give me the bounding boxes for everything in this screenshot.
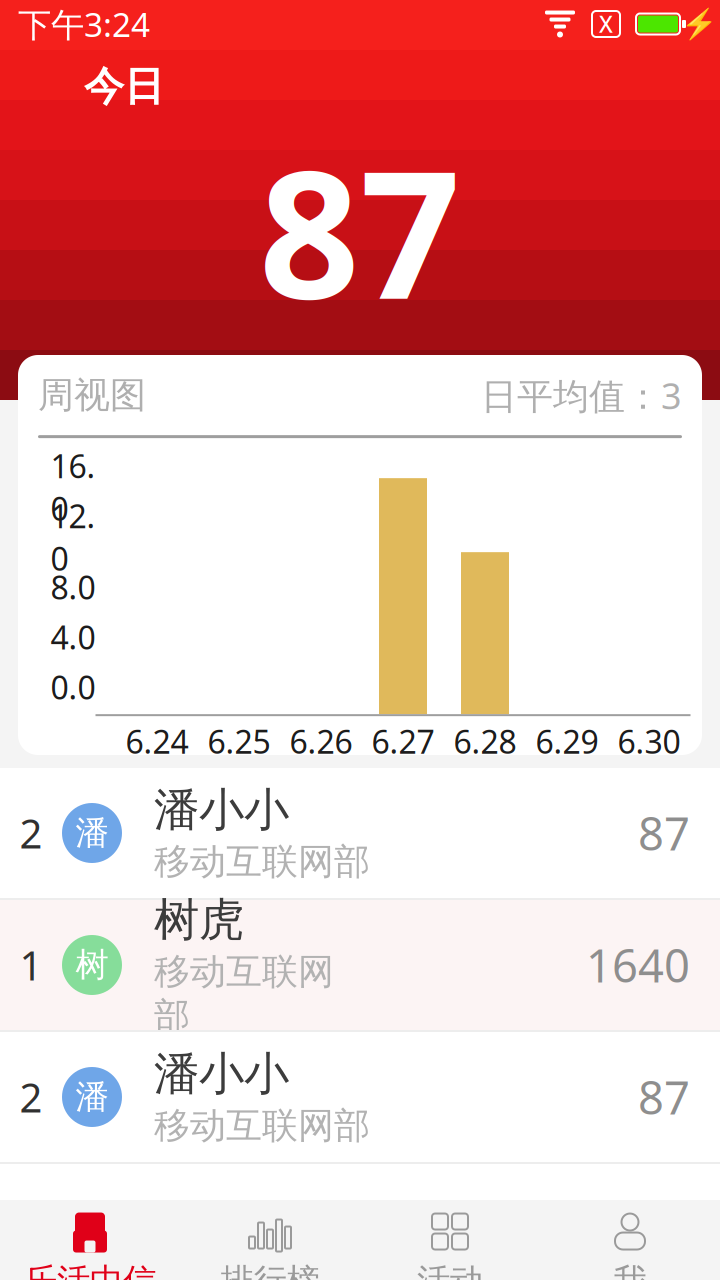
staticText: 潘小小: [154, 782, 289, 838]
staticText: 87: [638, 1067, 690, 1127]
staticText: 1: [19, 938, 42, 991]
staticText: 16.0: [50, 445, 95, 530]
staticText: 排行榜: [220, 1260, 319, 1280]
staticText: 潘小小: [154, 1046, 289, 1102]
button[interactable]: 乐活中信: [0, 1208, 180, 1280]
button[interactable]: 1: [0, 900, 720, 1030]
staticText: 12.0: [50, 495, 95, 580]
button[interactable]: 活动: [360, 1208, 540, 1280]
staticText: 下午3:24: [18, 2, 150, 46]
staticText: 潘: [75, 1076, 108, 1117]
staticText: ⚡: [680, 7, 717, 41]
staticText: 日平均值：3: [481, 371, 682, 419]
staticText: 周视图: [38, 373, 146, 417]
staticText: 潘: [75, 812, 108, 853]
staticText: 6.25: [207, 720, 270, 763]
staticText: 活动: [417, 1260, 483, 1280]
staticText: 0.0: [50, 666, 95, 708]
staticText: 乐活中信: [24, 1260, 156, 1280]
staticText: 6.24: [125, 720, 188, 763]
staticText: 今日: [84, 62, 164, 111]
staticText: 2: [19, 806, 42, 859]
staticText: 2: [19, 1070, 42, 1123]
button[interactable]: 2: [0, 1032, 720, 1162]
staticText: X: [599, 9, 613, 39]
staticText: 6.27: [371, 720, 434, 763]
button[interactable]: 我: [540, 1208, 720, 1280]
staticText: 1640: [586, 935, 690, 995]
button[interactable]: 排行榜: [180, 1208, 360, 1280]
staticText: 我: [613, 1260, 646, 1280]
staticText: 6.29: [535, 720, 598, 763]
staticText: 87: [638, 803, 690, 863]
staticText: 树虎: [154, 892, 244, 948]
staticText: 移动互联网部: [154, 1104, 370, 1148]
staticText: 6.28: [453, 720, 516, 763]
staticText: 6.26: [289, 720, 352, 763]
staticText: 8.0: [50, 566, 95, 608]
staticText: 移动互联网部: [154, 950, 334, 1038]
button[interactable]: 2: [0, 768, 720, 898]
staticText: 6.30: [617, 720, 680, 763]
staticText: 87: [259, 113, 461, 347]
staticText: 4.0: [50, 616, 95, 658]
staticText: 树: [75, 944, 108, 985]
staticText: 移动互联网部: [154, 840, 370, 884]
